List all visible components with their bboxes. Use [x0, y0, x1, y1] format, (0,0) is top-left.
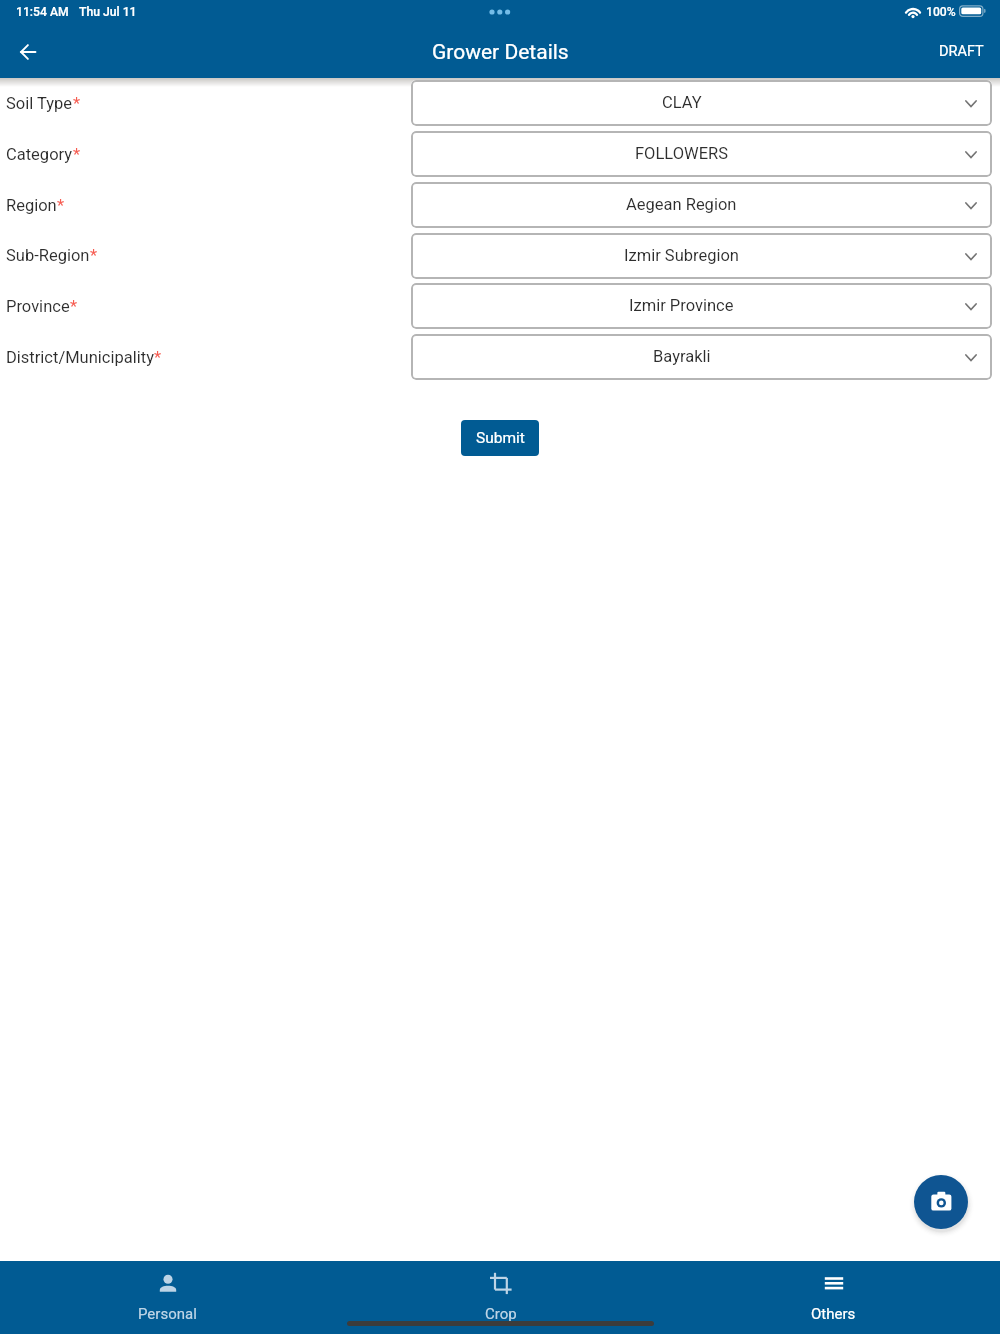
staticText: 11:54 AM — [16, 5, 69, 19]
staticText: DRAFT — [939, 43, 984, 60]
staticText: * — [90, 246, 98, 265]
staticText: * — [70, 297, 78, 316]
button[interactable]: Take photo — [914, 1175, 968, 1229]
staticText: * — [73, 145, 81, 164]
staticText: District/Municipality — [6, 348, 154, 367]
staticText: Personal — [138, 1305, 197, 1323]
staticText: Grower Details — [432, 40, 569, 65]
staticText: Region — [6, 196, 57, 215]
button[interactable]: Izmir Subregion — [411, 233, 992, 279]
staticText: * — [57, 196, 65, 215]
button[interactable]: Others — [667, 1261, 1000, 1334]
button[interactable]: FOLLOWERS — [411, 131, 992, 177]
staticText: Aegean Region — [626, 195, 737, 214]
staticText: Category — [6, 145, 73, 164]
staticText: Bayrakli — [653, 347, 711, 366]
staticText: * — [73, 94, 81, 113]
staticText: FOLLOWERS — [635, 144, 729, 163]
button[interactable]: DRAFT — [921, 33, 1000, 70]
button[interactable]: Bayrakli — [411, 334, 992, 380]
staticText: Crop — [485, 1305, 517, 1323]
staticText: Izmir Province — [629, 296, 734, 315]
staticText: Others — [811, 1305, 856, 1323]
staticText: CLAY — [662, 93, 702, 112]
button[interactable]: Personal — [0, 1261, 334, 1334]
button[interactable]: Back — [0, 26, 56, 78]
staticText: Soil Type — [6, 94, 73, 113]
button[interactable]: Submit — [461, 420, 539, 456]
staticText: Submit — [476, 429, 525, 447]
staticText: Izmir Subregion — [624, 246, 739, 265]
staticText: Province — [6, 297, 70, 316]
button[interactable]: Izmir Province — [411, 283, 992, 329]
button[interactable]: Crop — [334, 1261, 667, 1334]
staticText: Sub-Region — [6, 246, 90, 265]
staticText: * — [154, 348, 162, 367]
staticText: 100% — [926, 5, 956, 19]
staticText: Thu Jul 11 — [79, 5, 137, 19]
button[interactable]: Aegean Region — [411, 182, 992, 228]
button[interactable]: CLAY — [411, 80, 992, 126]
